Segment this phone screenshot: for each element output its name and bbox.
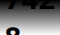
staticText: 7428 — [4, 0, 55, 35]
